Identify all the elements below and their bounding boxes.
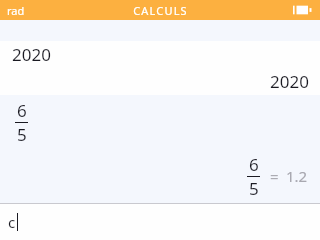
other: Battery [293, 4, 313, 16]
staticText: 2020 [270, 70, 309, 93]
staticText: 1.2 [286, 166, 308, 186]
staticText: CALCULS [133, 3, 188, 18]
button[interactable]: 2020 [0, 41, 320, 95]
staticText: 6 [17, 99, 27, 122]
staticText: = [270, 166, 279, 186]
staticText: 2020 [12, 43, 51, 66]
staticText: 5 [249, 177, 259, 200]
staticText: rad [7, 3, 25, 18]
staticText: 5 [17, 123, 27, 146]
button[interactable]: c [0, 204, 320, 240]
staticText: 6 [249, 153, 259, 176]
button[interactable]: 6 [0, 95, 320, 203]
staticText: c [8, 212, 16, 232]
